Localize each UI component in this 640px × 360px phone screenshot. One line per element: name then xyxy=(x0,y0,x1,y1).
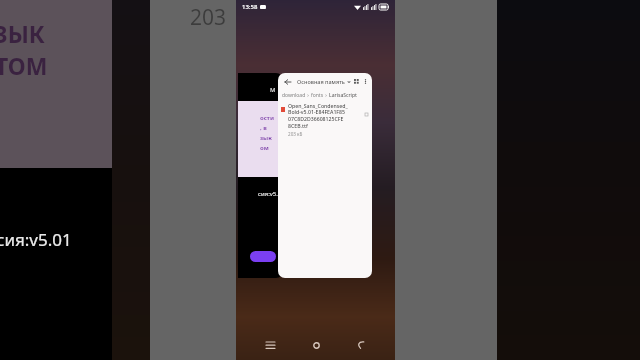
staticText: м xyxy=(270,85,276,95)
staticText: сия:v5.01 xyxy=(258,190,283,198)
button[interactable]: LarisaScript xyxy=(329,92,357,99)
staticText: 203 кБ xyxy=(288,131,303,136)
button[interactable]: м xyxy=(238,73,283,278)
button[interactable]: Основная память xyxy=(297,78,351,85)
staticText: 203 xyxy=(190,3,227,32)
button[interactable]: Open_Sans_Condensed_ Bold-v5.01-E84FEA1F… xyxy=(278,102,372,136)
button[interactable]: Grid view xyxy=(351,76,362,87)
staticText: Основная память xyxy=(297,78,345,85)
staticText: 13:58 xyxy=(242,3,258,11)
button[interactable]: Home xyxy=(304,333,328,357)
staticText: ЗЫК xyxy=(0,18,45,49)
button[interactable]: More options xyxy=(362,76,368,87)
button[interactable] xyxy=(250,251,276,262)
staticText: ТОМ xyxy=(0,50,48,81)
staticText: › xyxy=(324,92,329,99)
staticText: зык xyxy=(260,134,272,142)
staticText: › xyxy=(306,92,311,99)
staticText: сия:v5.01 xyxy=(0,228,72,251)
staticText: ом xyxy=(260,144,269,152)
button[interactable]: Back xyxy=(282,76,293,87)
button[interactable]: Select file xyxy=(363,111,369,117)
button[interactable]: Back xyxy=(349,333,373,357)
button[interactable]: download xyxy=(282,92,306,99)
button[interactable]: Recent apps xyxy=(258,333,282,357)
button[interactable]: fonts xyxy=(311,92,324,99)
staticText: Open_Sans_Condensed_ Bold-v5.01-E84FEA1F… xyxy=(288,102,348,130)
staticText: , в xyxy=(260,124,267,132)
staticText: ости xyxy=(260,114,274,122)
